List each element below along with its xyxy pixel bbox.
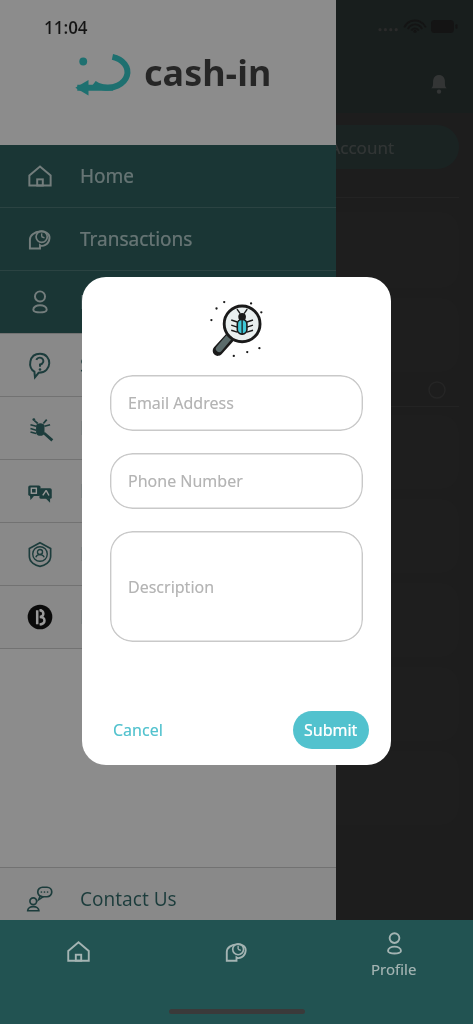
staticText: Cancel (113, 719, 163, 741)
button[interactable] (14, 415, 459, 489)
staticText: Transactions (80, 226, 193, 252)
button[interactable]: Contact Us (0, 868, 336, 930)
staticText: Home (80, 163, 135, 189)
button[interactable]: Submit (293, 711, 369, 749)
button[interactable]: Cancel (102, 711, 174, 749)
button[interactable]: Restore Account (200, 125, 459, 169)
staticText: Privacy (80, 541, 144, 567)
staticText: Description (128, 576, 215, 598)
staticText: Support (80, 352, 152, 378)
button[interactable] (14, 499, 459, 573)
staticText: FAQ (80, 478, 117, 504)
button[interactable]: FAQ (0, 460, 336, 522)
staticText: Bitcoin (80, 604, 142, 630)
button[interactable]: Profile (0, 271, 336, 333)
button[interactable] (14, 751, 459, 825)
staticText: Profile (80, 289, 138, 315)
button[interactable]: Email Address (110, 375, 363, 431)
button[interactable]: Support (0, 334, 336, 396)
button[interactable]: Home (0, 920, 157, 986)
staticText: Restore Account (264, 136, 395, 159)
button[interactable]: Description (110, 531, 363, 642)
button[interactable] (14, 212, 459, 288)
button[interactable]: Bitcoin (0, 586, 336, 648)
button[interactable] (14, 667, 459, 741)
staticText: Contact Us (80, 886, 177, 912)
button[interactable]: Profile (315, 920, 473, 986)
button[interactable]: Transactions (157, 920, 315, 986)
staticText: cash-in (144, 48, 272, 97)
button[interactable]: Report Bug (0, 397, 336, 459)
staticText: Profile (371, 959, 417, 979)
staticText: Email Address (128, 392, 234, 414)
button[interactable]: Privacy (0, 523, 336, 585)
button[interactable]: Phone Number (110, 453, 363, 509)
staticText: Phone Number (128, 470, 243, 492)
button[interactable] (14, 298, 459, 372)
staticText: 11:04 (44, 16, 88, 39)
staticText: Submit (304, 719, 358, 741)
button[interactable] (14, 583, 459, 657)
button[interactable]: Transactions (0, 208, 336, 270)
other: Notifications (427, 71, 451, 95)
staticText: Report Bug (80, 415, 182, 441)
button[interactable]: Home (0, 145, 336, 207)
